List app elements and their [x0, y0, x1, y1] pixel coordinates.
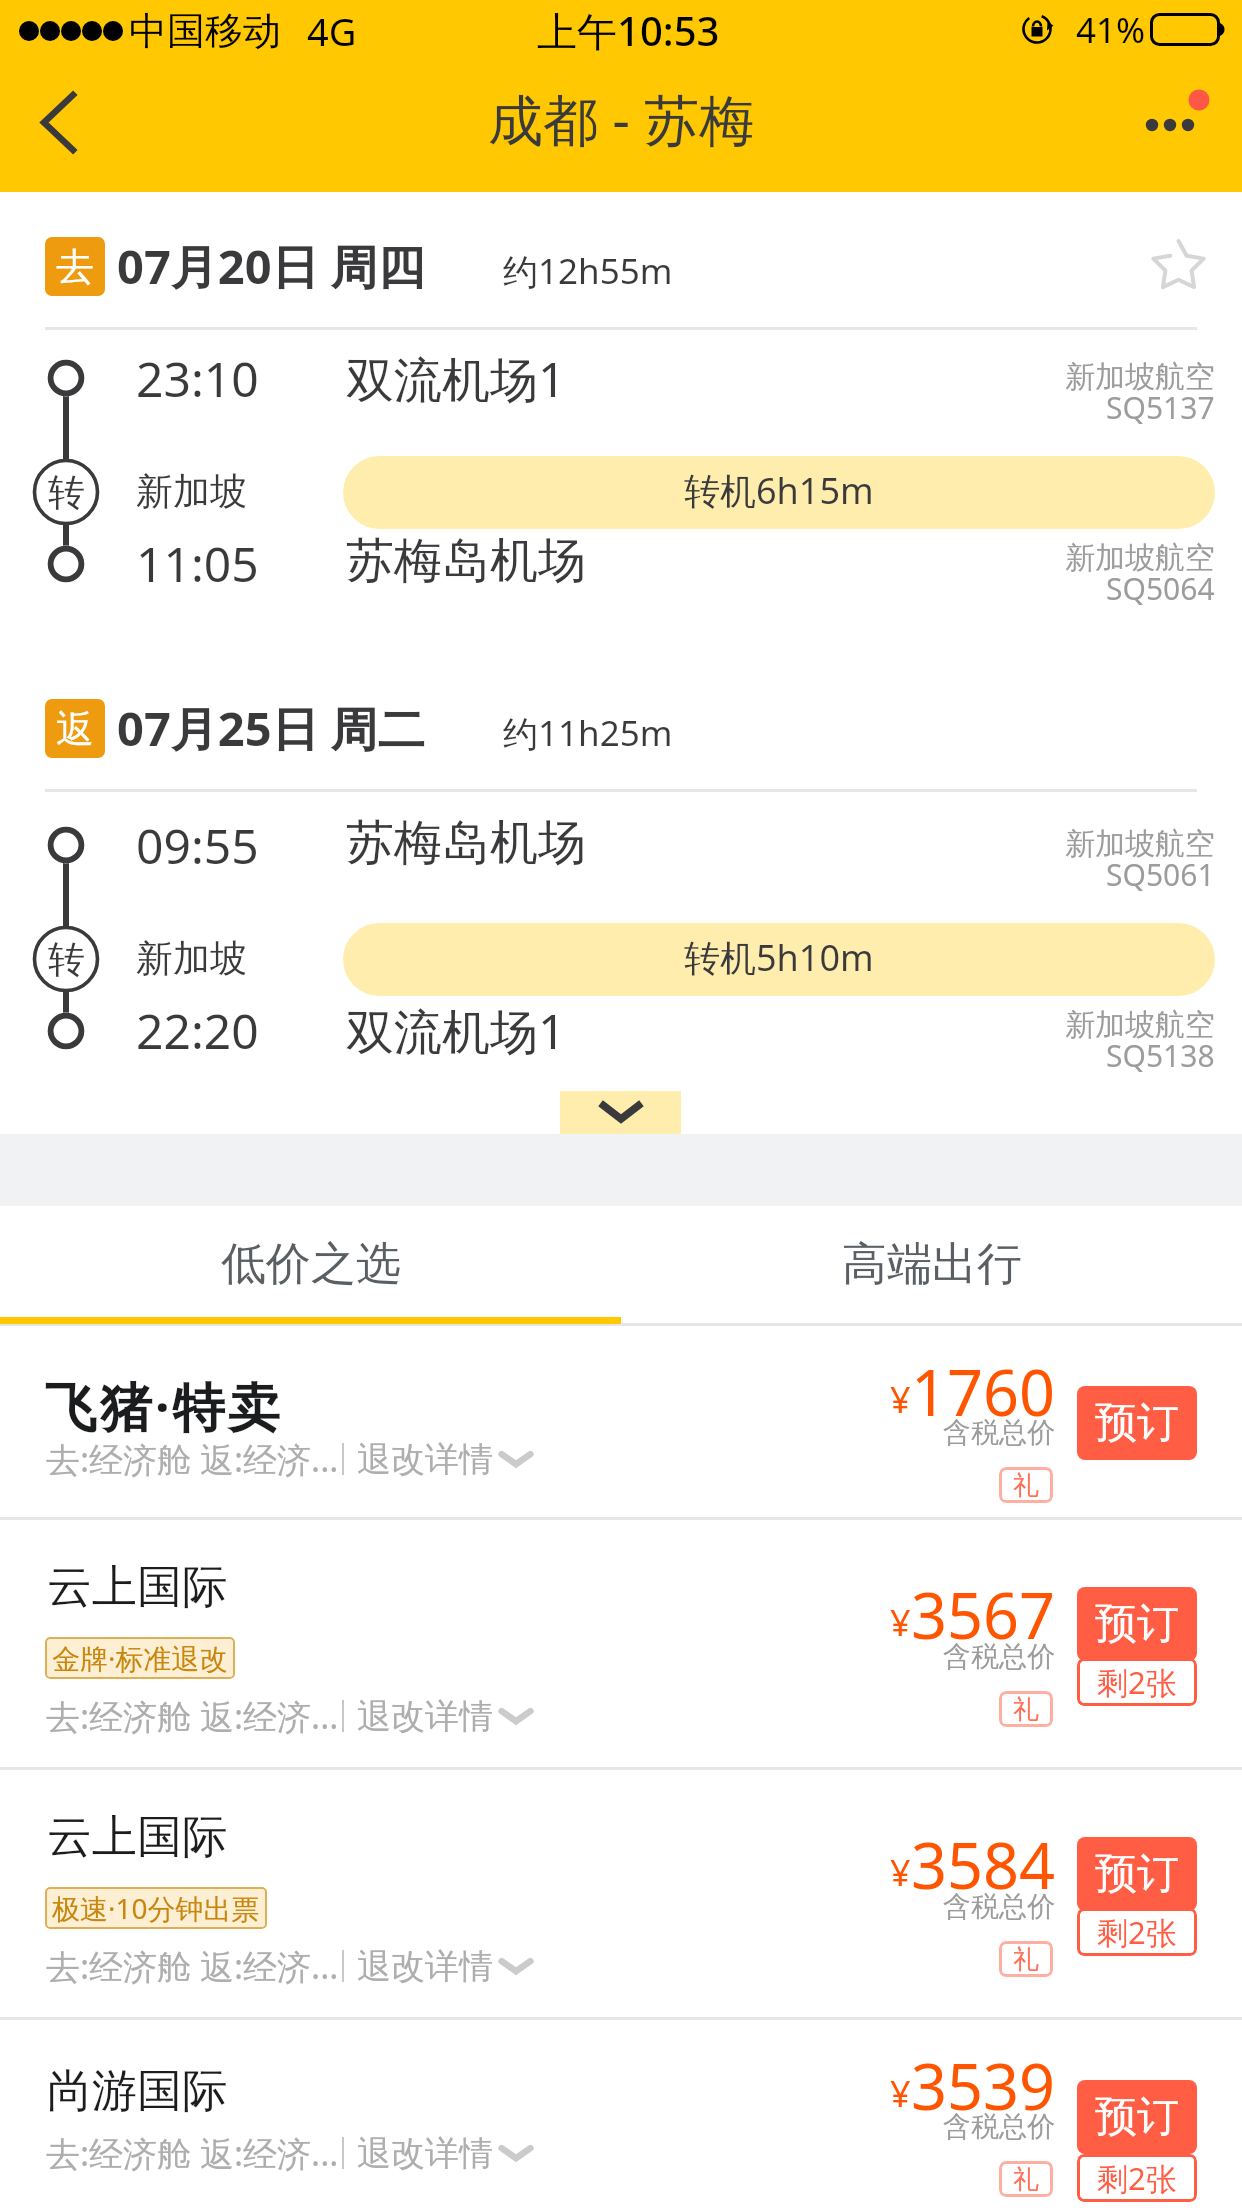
staticText: 退改详情 — [357, 2132, 493, 2175]
staticText: 22:20 — [136, 998, 259, 1063]
staticText: 转机6h15m — [684, 466, 874, 515]
button[interactable]: 高端出行 — [621, 1206, 1242, 1323]
staticText: ¥ — [890, 1848, 911, 1897]
staticText: 3539 — [911, 2043, 1056, 2129]
staticText: 含税总价 — [943, 1639, 1055, 1674]
staticText: 礼 — [1013, 1693, 1039, 1726]
staticText: 双流机场1 — [346, 346, 566, 412]
staticText: 新加坡 — [136, 935, 247, 982]
staticText: 云上国际 — [47, 1559, 227, 1616]
button[interactable]: 收藏 — [1130, 218, 1226, 314]
staticText: 飞猪·特卖 — [45, 1370, 283, 1441]
button[interactable]: 低价之选 — [0, 1206, 621, 1323]
staticText: SQ5138 — [1106, 1035, 1215, 1076]
button[interactable]: 云上国际 — [0, 1770, 1242, 2020]
button[interactable]: 展开 — [560, 1091, 681, 1134]
button[interactable]: 预订 — [1077, 1837, 1197, 1911]
button[interactable]: 更多 — [1120, 62, 1242, 192]
staticText: 上午10:53 — [537, 3, 720, 58]
staticText: 金牌·标准退改 — [52, 1639, 228, 1677]
staticText: 转机5h10m — [684, 933, 874, 982]
staticText: SQ5137 — [1106, 387, 1215, 428]
staticText: 09:55 — [136, 813, 259, 878]
staticText: 23:10 — [136, 346, 259, 411]
staticText: 预订 — [1095, 1848, 1179, 1901]
staticText: 成都 - 苏梅 — [488, 81, 755, 156]
staticText: 新加坡航空 — [1065, 1006, 1215, 1044]
staticText: SQ5064 — [1106, 568, 1215, 609]
button[interactable]: 云上国际 — [0, 1520, 1242, 1770]
staticText: 尚游国际 — [47, 2063, 227, 2120]
staticText: 低价之选 — [221, 1236, 401, 1293]
staticText: 退改详情 — [357, 1438, 493, 1481]
staticText: 礼 — [1013, 1943, 1039, 1976]
staticText: 去:经济舱 返:经济... — [46, 1693, 339, 1739]
staticText: ¥ — [890, 1375, 911, 1424]
staticText: 去 — [56, 243, 94, 291]
staticText: 预订 — [1095, 1598, 1179, 1651]
staticText: SQ5061 — [1106, 854, 1215, 895]
staticText: 新加坡 — [136, 468, 247, 515]
staticText: 去:经济舱 返:经济... — [46, 1943, 339, 1989]
staticText: 双流机场1 — [346, 998, 566, 1064]
staticText: 剩2张 — [1097, 1911, 1177, 1953]
staticText: 3567 — [911, 1572, 1056, 1658]
staticText: ¥ — [890, 2069, 911, 2118]
button[interactable]: 预订 — [1077, 1386, 1197, 1460]
staticText: 转 — [48, 936, 85, 983]
staticText: 苏梅岛机场 — [346, 531, 586, 591]
staticText: 4G — [307, 5, 357, 57]
button[interactable]: 返回 — [0, 62, 120, 192]
button[interactable]: 预订 — [1077, 1587, 1197, 1661]
staticText: 礼 — [1013, 1469, 1039, 1502]
staticText: 预订 — [1095, 1397, 1179, 1450]
staticText: 退改详情 — [357, 1695, 493, 1738]
staticText: 约11h25m — [503, 709, 673, 757]
staticText: 去:经济舱 返:经济... — [46, 1436, 339, 1482]
staticText: 11:05 — [136, 531, 259, 596]
staticText: 含税总价 — [943, 2109, 1055, 2144]
staticText: 中国移动 — [129, 7, 281, 55]
button[interactable]: 飞猪·特卖 — [0, 1326, 1242, 1520]
staticText: 07月25日 周二 — [117, 696, 425, 760]
staticText: 新加坡航空 — [1065, 539, 1215, 577]
staticText: 预订 — [1095, 2091, 1179, 2144]
staticText: 含税总价 — [943, 1415, 1055, 1450]
staticText: 剩2张 — [1097, 2157, 1177, 2199]
staticText: 返 — [56, 705, 94, 753]
staticText: 转 — [48, 469, 85, 516]
staticText: 礼 — [1013, 2163, 1039, 2196]
button[interactable]: 预订 — [1077, 2080, 1197, 2154]
staticText: 苏梅岛机场 — [346, 813, 586, 873]
staticText: 退改详情 — [357, 1945, 493, 1988]
staticText: 1760 — [911, 1349, 1056, 1435]
staticText: 新加坡航空 — [1065, 825, 1215, 863]
staticText: ¥ — [890, 1598, 911, 1647]
staticText: 剩2张 — [1097, 1661, 1177, 1703]
staticText: 3584 — [911, 1822, 1056, 1908]
staticText: 高端出行 — [842, 1236, 1022, 1293]
staticText: 约12h55m — [503, 247, 673, 295]
staticText: 含税总价 — [943, 1889, 1055, 1924]
staticText: 41% — [1076, 6, 1146, 54]
staticText: 新加坡航空 — [1065, 358, 1215, 396]
staticText: 极速·10分钟出票 — [52, 1889, 260, 1927]
staticText: 去:经济舱 返:经济... — [46, 2130, 339, 2176]
staticText: 07月20日 周四 — [117, 234, 425, 298]
button[interactable]: 尚游国际 — [0, 2020, 1242, 2208]
staticText: 云上国际 — [47, 1809, 227, 1866]
